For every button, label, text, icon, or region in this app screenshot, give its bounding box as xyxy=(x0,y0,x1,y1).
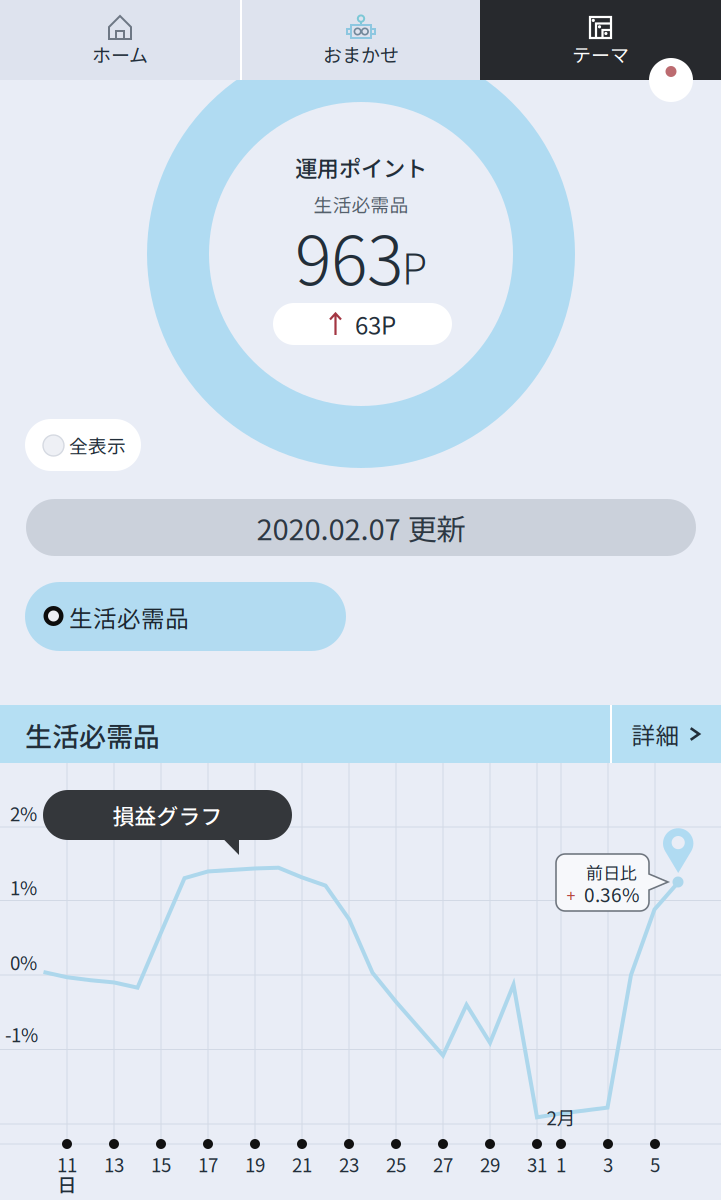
staticText: 25 xyxy=(386,1150,406,1178)
staticText: 詳細 xyxy=(631,717,679,751)
staticText: 運用ポイント xyxy=(295,151,427,183)
staticText: 2% xyxy=(10,799,37,827)
button[interactable]: おまかせ xyxy=(242,0,480,80)
staticText: 1 xyxy=(556,1150,566,1178)
staticText: 15 xyxy=(151,1150,171,1178)
staticText: 29 xyxy=(480,1150,500,1178)
button[interactable]: 生活必需品 xyxy=(25,582,346,651)
staticText: 生活必需品 xyxy=(313,190,408,218)
staticText: 23 xyxy=(339,1150,359,1178)
staticText: おまかせ xyxy=(323,40,399,68)
staticText: P xyxy=(402,237,427,296)
staticText: 損益グラフ xyxy=(112,799,222,831)
staticText: 前日比 xyxy=(586,860,637,884)
staticText: 13 xyxy=(104,1150,124,1178)
staticText: 生活必需品 xyxy=(25,715,160,754)
staticText: 3 xyxy=(603,1150,613,1178)
staticText: テーマ xyxy=(572,40,629,68)
staticText: 11 xyxy=(57,1150,77,1178)
staticText: 0.36% xyxy=(584,880,640,908)
button[interactable]: 全表示 xyxy=(25,419,141,471)
staticText: + xyxy=(566,883,575,907)
button[interactable]: ヘルプ xyxy=(649,58,693,102)
staticText: 生活必需品 xyxy=(69,600,189,634)
staticText: -1% xyxy=(5,1020,38,1048)
staticText: 19 xyxy=(245,1150,265,1178)
staticText: 5 xyxy=(650,1150,660,1178)
staticText: 31 xyxy=(527,1150,547,1178)
staticText: 2月 xyxy=(546,1103,575,1131)
staticText: 27 xyxy=(433,1150,453,1178)
staticText: 63P xyxy=(355,307,396,341)
staticText: 全表示 xyxy=(69,431,126,459)
button[interactable]: テーマ xyxy=(480,0,721,80)
staticText: 21 xyxy=(292,1150,312,1178)
staticText: 17 xyxy=(198,1150,218,1178)
staticText: ホーム xyxy=(92,40,148,68)
button[interactable]: ホーム xyxy=(0,0,240,80)
staticText: 日 xyxy=(57,1170,76,1198)
staticText: 0% xyxy=(10,948,37,976)
button[interactable]: 詳細 xyxy=(611,705,721,763)
staticText: 2020.02.07 更新 xyxy=(256,506,465,549)
staticText: 1% xyxy=(10,873,37,901)
staticText: 963 xyxy=(295,206,403,304)
button[interactable]: 63P xyxy=(273,303,452,345)
